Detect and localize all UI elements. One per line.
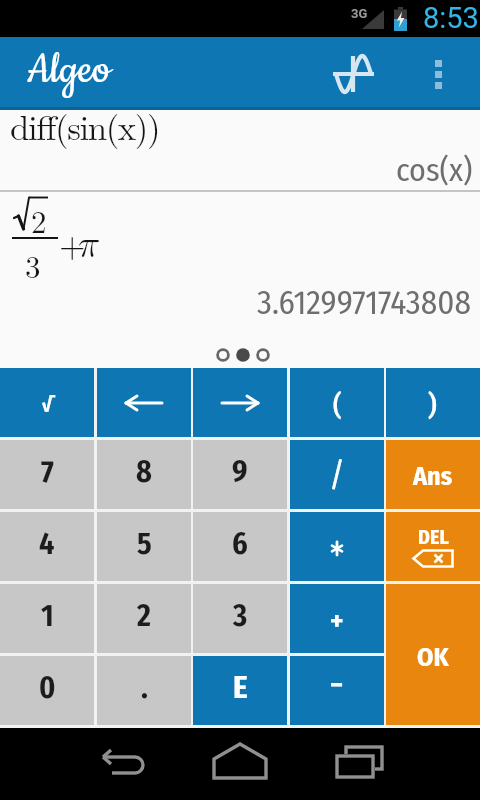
button[interactable] — [290, 512, 384, 581]
button[interactable]: 8 — [97, 440, 191, 509]
button[interactable] — [92, 748, 148, 780]
button[interactable]: 7 — [0, 440, 94, 509]
button[interactable]: 6 — [193, 512, 287, 581]
button[interactable]: ) — [386, 368, 480, 437]
staticText: 9 — [232, 454, 248, 490]
button[interactable]: − — [290, 656, 384, 725]
button[interactable]: 2 — [97, 584, 191, 653]
staticText: DEL — [418, 525, 449, 549]
staticText: + — [59, 219, 86, 267]
staticText: 𝜋 — [78, 226, 100, 263]
button[interactable]: Ans — [386, 440, 480, 509]
button[interactable]: DEL — [386, 512, 480, 581]
staticText: 5 — [137, 526, 152, 562]
staticText: ( — [332, 388, 342, 420]
staticText: diff(sin(x)) — [10, 101, 160, 151]
button[interactable] — [212, 742, 268, 782]
staticText: E — [233, 669, 248, 706]
staticText: 8:53 — [423, 1, 479, 35]
button[interactable]: 9 — [193, 440, 287, 509]
staticText: 6 — [232, 526, 248, 562]
button[interactable]: ( — [290, 368, 384, 437]
staticText: 1 — [41, 598, 54, 634]
button[interactable]: / — [290, 440, 384, 509]
staticText: / — [329, 454, 345, 495]
staticText: OK — [417, 642, 449, 673]
button[interactable] — [331, 51, 377, 97]
staticText: 3 — [25, 243, 41, 287]
staticText: − — [330, 668, 344, 702]
button[interactable] — [193, 368, 287, 437]
button[interactable]: 0 — [0, 656, 94, 725]
staticText: 2 — [137, 598, 151, 634]
staticText: 3G — [351, 6, 368, 21]
staticText: √ — [42, 394, 52, 417]
button[interactable]: 4 — [0, 512, 94, 581]
button[interactable]: 5 — [97, 512, 191, 581]
staticText: 3 — [233, 598, 248, 634]
staticText: 0 — [39, 670, 56, 706]
staticText: 4 — [39, 526, 55, 562]
button[interactable]: 3 — [193, 584, 287, 653]
button[interactable] — [332, 744, 388, 782]
button[interactable]: E — [193, 656, 287, 725]
button[interactable]: OK — [386, 584, 480, 725]
staticText: ) — [428, 388, 438, 420]
staticText: cos(x) — [396, 151, 473, 189]
button[interactable]: √ — [0, 368, 94, 437]
button[interactable]: . — [97, 656, 191, 725]
button[interactable]: + — [290, 584, 384, 653]
staticText: + — [330, 604, 344, 638]
staticText: Algeo — [27, 43, 111, 97]
staticText: 8 — [136, 454, 152, 490]
button[interactable] — [420, 52, 456, 96]
staticText: 2 — [31, 198, 47, 242]
staticText: . — [141, 670, 148, 706]
button[interactable]: 1 — [0, 584, 94, 653]
staticText: 3.6129971743808 — [257, 283, 471, 323]
staticText: 7 — [41, 454, 54, 490]
button[interactable] — [97, 368, 191, 437]
staticText: Ans — [413, 461, 453, 492]
